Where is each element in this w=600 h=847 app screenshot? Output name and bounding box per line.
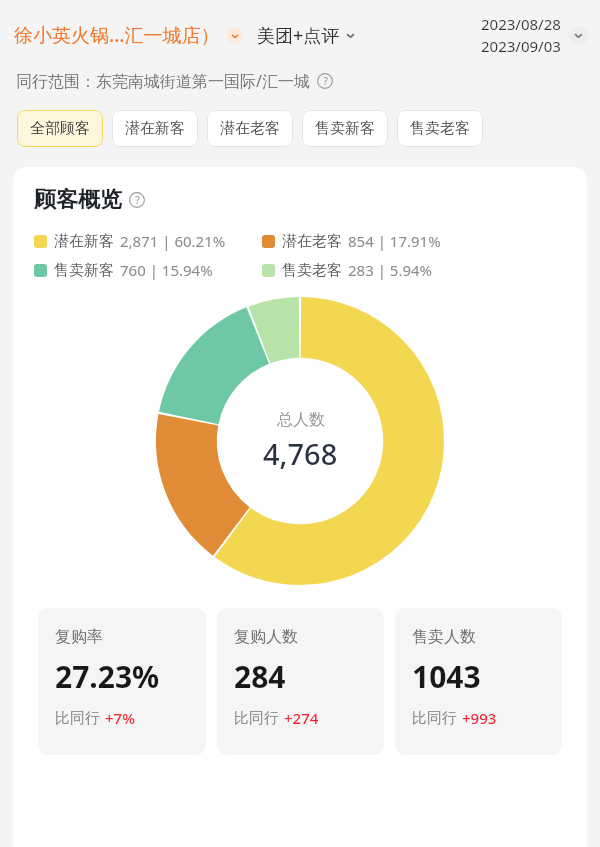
staticText: 总人数 [277, 410, 325, 430]
button[interactable]: 2023/08/28 [481, 14, 588, 56]
staticText: 2023/08/28 [481, 14, 561, 34]
staticText: 比同行 [55, 709, 100, 728]
staticText: 2,871 | 60.21% [120, 231, 226, 251]
button[interactable]: 复购率 [38, 608, 206, 755]
button[interactable]: 同行范围说明 [317, 73, 333, 89]
button[interactable]: 复购人数 [217, 608, 384, 755]
button[interactable]: 顾客概览说明 [129, 192, 145, 208]
staticText: ? [323, 74, 328, 88]
staticText: 售卖新客 [315, 119, 375, 138]
staticText: 售卖人数 [412, 627, 476, 647]
staticText: 复购人数 [234, 627, 298, 647]
button[interactable]: 美团+点评 [257, 23, 357, 48]
staticText: 比同行 [234, 709, 279, 728]
staticText: 比同行 [412, 709, 457, 728]
staticText: 美团+点评 [257, 23, 340, 48]
staticText: 潜在新客 [125, 119, 185, 138]
staticText: 售卖老客 [410, 119, 470, 138]
staticText: 顾客概览 [34, 186, 122, 214]
button[interactable]: 售卖人数 [395, 608, 562, 755]
staticText: 徐小英火锅...汇一城店） [14, 22, 220, 48]
staticText: 潜在老客 [220, 119, 280, 138]
staticText: 潜在老客 [282, 232, 342, 251]
staticText: +7% [105, 708, 135, 728]
staticText: 4,768 [263, 434, 338, 473]
staticText: 27.23% [55, 656, 160, 697]
staticText: 283 | 5.94% [348, 260, 433, 280]
button[interactable]: 全部顾客 [17, 110, 103, 147]
staticText: 1043 [412, 656, 481, 697]
staticText: 854 | 17.91% [348, 231, 441, 251]
staticText: +993 [462, 708, 497, 728]
button[interactable]: 售卖新客 [302, 110, 388, 147]
staticText: 2023/09/03 [481, 36, 561, 56]
staticText: 售卖新客 [54, 261, 114, 280]
staticText: 潜在新客 [54, 232, 114, 251]
button[interactable]: 潜在新客 [112, 110, 198, 147]
staticText: +274 [284, 708, 319, 728]
button[interactable]: 潜在老客 [207, 110, 293, 147]
staticText: 284 [234, 656, 286, 697]
staticText: 售卖老客 [282, 261, 342, 280]
staticText: 760 | 15.94% [120, 260, 213, 280]
staticText: 同行范围：东莞南城街道第一国际/汇一城 [16, 70, 310, 92]
staticText: 复购率 [55, 627, 103, 647]
button[interactable]: 售卖老客 [397, 110, 483, 147]
staticText: ? [135, 193, 140, 207]
staticText: 全部顾客 [30, 119, 90, 138]
button[interactable]: 徐小英火锅...汇一城店） [14, 22, 243, 48]
